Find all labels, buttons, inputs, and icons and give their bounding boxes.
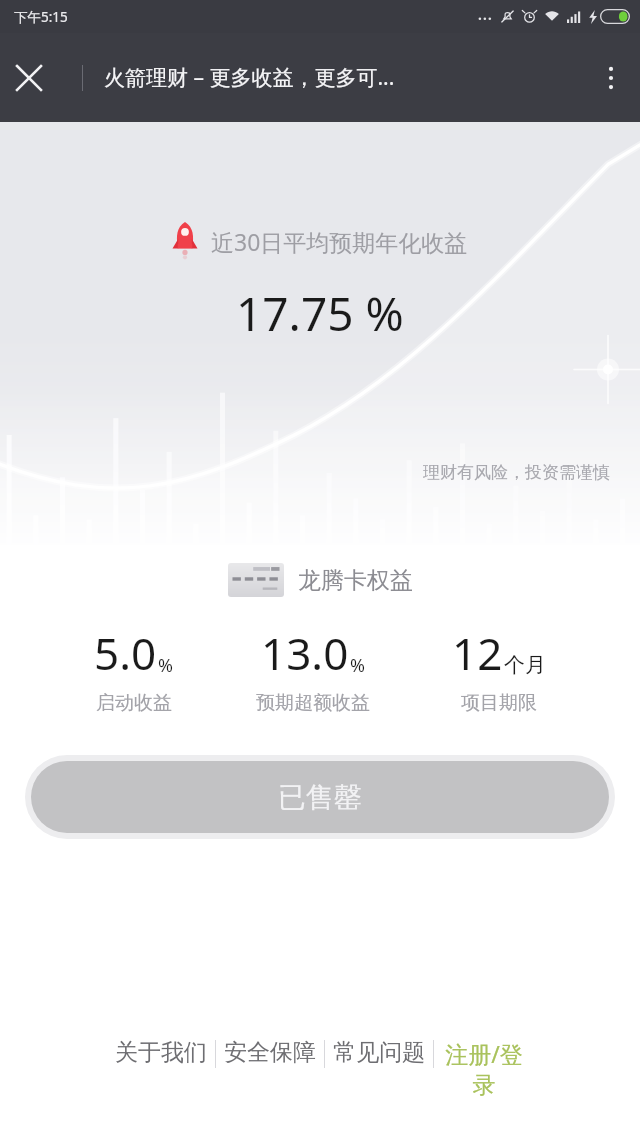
button[interactable]: 关于我们 [107,1036,215,1069]
button[interactable]: 安全保障 [216,1036,324,1069]
staticText: 常见问题 [333,1038,425,1067]
staticText: % [158,653,173,678]
staticText: 个月 [504,652,546,678]
staticText: 13.0 [261,623,349,683]
staticText: 火箭理财 – 更多收益，更多可... [104,63,395,92]
staticText: 17.75 % [236,282,404,345]
staticText: % [350,653,365,678]
button[interactable]: 13.0 [256,623,370,715]
staticText: 近30日平均预期年化收益 [211,226,468,257]
button[interactable]: 注册/登录 [434,1036,534,1102]
staticText: 已售罄 [278,780,362,815]
button[interactable]: More options [582,49,640,107]
staticText: 安全保障 [224,1038,316,1067]
staticText: 12 [452,623,503,683]
button[interactable]: 龙腾卡权益 [0,563,640,597]
staticText: 5.0 [94,623,157,683]
staticText: 理财有风险，投资需谨慎 [423,462,610,483]
button[interactable]: Close [0,49,58,107]
staticText: 注册/登录 [440,1038,528,1100]
staticText: 龙腾卡权益 [298,566,413,595]
staticText: 项目期限 [461,691,537,715]
staticText: 下午5:15 [14,8,68,26]
staticText: 启动收益 [96,691,172,715]
button[interactable]: 已售罄 [31,761,609,833]
staticText: 关于我们 [115,1038,207,1067]
button[interactable]: 12 [452,623,546,715]
button[interactable]: 5.0 [94,623,173,715]
button[interactable]: 常见问题 [325,1036,433,1069]
staticText: 预期超额收益 [256,691,370,715]
